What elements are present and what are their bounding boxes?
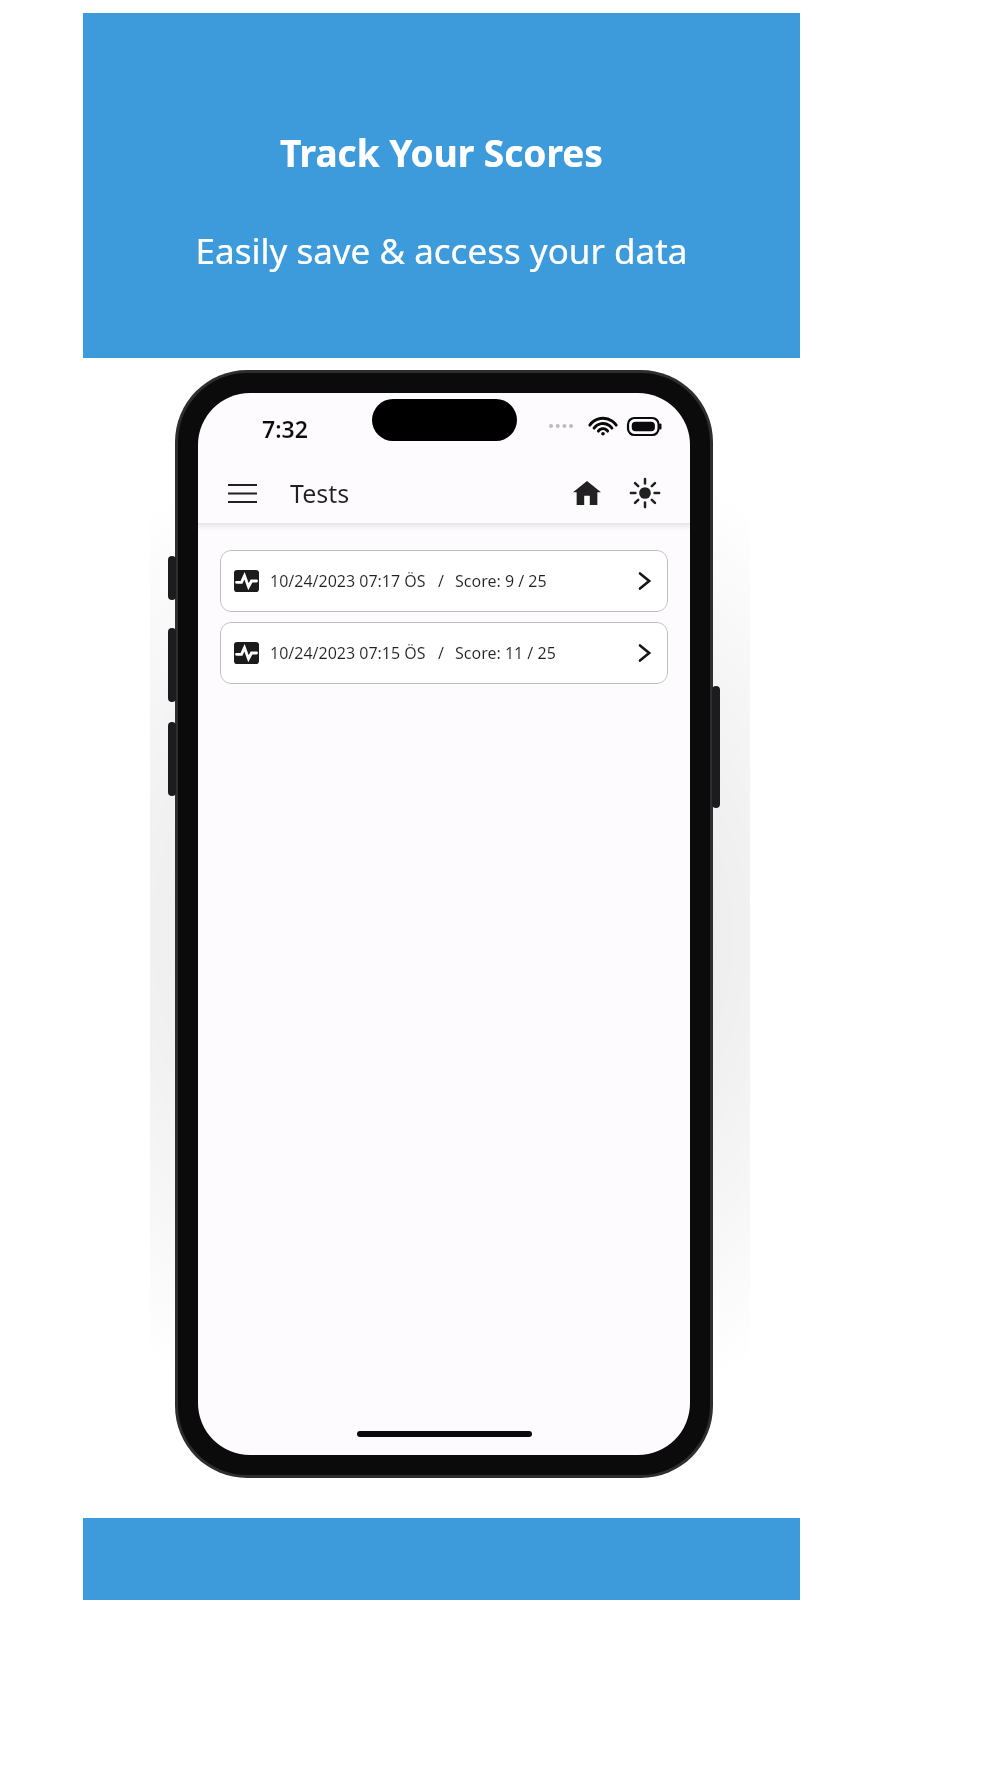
staticText: Track Your Scores bbox=[83, 127, 800, 177]
staticText: / bbox=[438, 570, 444, 592]
staticText: Easily save & access your data bbox=[83, 227, 800, 275]
staticText: Score: 11 / 25 bbox=[455, 642, 556, 664]
button[interactable]: 10/24/2023 07:15 ÖS bbox=[220, 622, 668, 684]
button[interactable]: Toggle theme bbox=[622, 470, 668, 516]
staticText: Tests bbox=[290, 476, 350, 510]
staticText: Score: 9 / 25 bbox=[455, 570, 547, 592]
staticText: 10/24/2023 07:17 ÖS bbox=[270, 570, 426, 592]
button[interactable]: 10/24/2023 07:17 ÖS bbox=[220, 550, 668, 612]
staticText: / bbox=[438, 642, 444, 664]
button[interactable]: Menu bbox=[220, 471, 264, 515]
staticText: 7:32 bbox=[262, 413, 308, 444]
staticText: 10/24/2023 07:15 ÖS bbox=[270, 642, 426, 664]
button[interactable]: Home bbox=[564, 470, 610, 516]
